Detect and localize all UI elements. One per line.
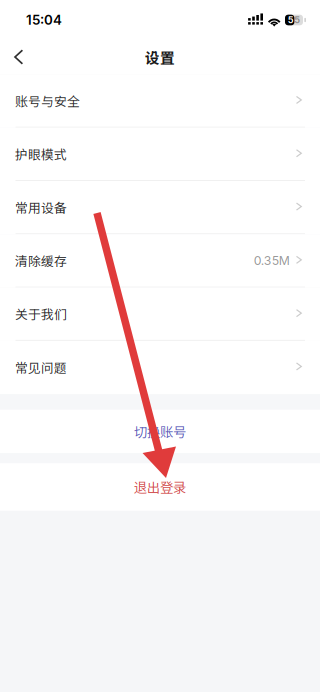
button[interactable]: 护眼模式 [0, 128, 320, 181]
staticText: 设置 [145, 46, 175, 68]
button[interactable]: 清除缓存 [0, 234, 320, 288]
staticText: 切换账号 [134, 422, 186, 441]
button[interactable]: 常用设备 [0, 181, 320, 234]
button[interactable]: 常见问题 [0, 341, 320, 394]
staticText: 账号与安全 [15, 91, 80, 110]
staticText: 退出登录 [134, 477, 186, 497]
button[interactable]: 退出登录 [0, 463, 320, 511]
staticText: 5 [288, 14, 294, 25]
button[interactable]: 切换账号 [0, 410, 320, 453]
staticText: 清除缓存 [15, 251, 67, 270]
staticText: 常见问题 [15, 358, 67, 376]
staticText: 常用设备 [15, 198, 67, 216]
staticText: 护眼模式 [15, 145, 67, 163]
button[interactable]: Back [0, 40, 37, 74]
button[interactable]: 关于我们 [0, 288, 320, 341]
staticText: 15:04 [26, 12, 62, 28]
staticText: 0.35M [254, 253, 290, 268]
staticText: 5 [294, 14, 300, 25]
staticText: 关于我们 [15, 304, 67, 323]
button[interactable]: 账号与安全 [0, 74, 320, 128]
